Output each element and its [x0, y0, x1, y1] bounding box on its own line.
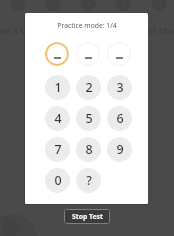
- staticText: 4: [54, 110, 62, 127]
- staticText: 3: [116, 79, 124, 96]
- button[interactable]: Current digit: [45, 42, 69, 66]
- staticText: Practice mode: 1/4: [57, 21, 117, 30]
- staticText: 6: [116, 110, 124, 127]
- button[interactable]: 4: [45, 106, 70, 131]
- staticText: 1: [54, 79, 62, 96]
- staticText: st start: [148, 24, 174, 37]
- staticText: ?: [86, 172, 92, 189]
- button[interactable]: 9: [107, 137, 132, 162]
- button[interactable]: Empty digit: [107, 42, 131, 66]
- button[interactable]: 1: [45, 75, 70, 100]
- staticText: Stop Test: [72, 212, 103, 221]
- button[interactable]: Empty digit: [76, 42, 100, 66]
- button[interactable]: 8: [76, 137, 101, 162]
- staticText: 0: [54, 172, 62, 189]
- button[interactable]: 6: [107, 106, 132, 131]
- staticText: 5: [85, 110, 93, 127]
- button[interactable]: 0: [45, 168, 70, 193]
- button[interactable]: 2: [76, 75, 101, 100]
- button[interactable]: ?: [76, 168, 101, 193]
- button[interactable]: Stop Test: [64, 209, 110, 224]
- button[interactable]: 7: [45, 137, 70, 162]
- staticText: ve a te: [0, 24, 30, 37]
- staticText: 7: [54, 141, 62, 158]
- staticText: 8: [85, 141, 93, 158]
- staticText: 9: [116, 141, 124, 158]
- staticText: 2: [85, 79, 93, 96]
- button[interactable]: 3: [107, 75, 132, 100]
- button[interactable]: 5: [76, 106, 101, 131]
